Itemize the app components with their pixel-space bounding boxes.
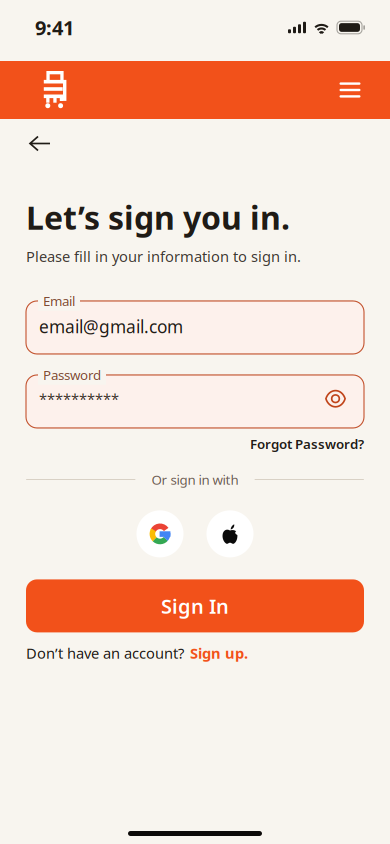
button[interactable]: Back bbox=[18, 124, 62, 163]
button[interactable]: Sign in with Google bbox=[136, 510, 183, 557]
staticText: Forgot Password? bbox=[250, 435, 364, 453]
staticText: Let’s sign you in. bbox=[26, 196, 290, 238]
button[interactable]: Menu bbox=[330, 68, 370, 112]
staticText: Or sign in with bbox=[151, 471, 238, 488]
staticText: 9:41 bbox=[35, 14, 74, 41]
button[interactable]: Sign in with Apple bbox=[206, 510, 253, 557]
staticText: Please fill in your information to sign … bbox=[26, 246, 301, 266]
button[interactable]: Show password bbox=[325, 390, 346, 408]
button[interactable]: Sign In bbox=[26, 579, 364, 632]
button[interactable]: Sign up. bbox=[190, 643, 248, 663]
button[interactable]: Forgot Password? bbox=[250, 435, 364, 453]
staticText: email@gmail.com bbox=[39, 315, 183, 338]
staticText: Sign In bbox=[161, 593, 229, 619]
staticText: ********** bbox=[39, 389, 119, 408]
staticText: Don’t have an account? bbox=[26, 643, 184, 663]
staticText: Email bbox=[43, 292, 75, 310]
staticText: Sign up. bbox=[190, 643, 248, 663]
staticText: Password bbox=[43, 366, 101, 384]
